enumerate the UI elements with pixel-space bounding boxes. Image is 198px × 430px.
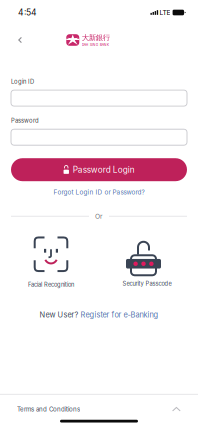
staticText: 大新銀行: [82, 33, 110, 42]
staticText: Password: [11, 117, 39, 124]
button[interactable]: Password Login: [11, 158, 187, 181]
button[interactable]: Back: [10, 30, 30, 50]
staticText: Or: [95, 212, 103, 220]
staticText: New User?: [39, 310, 78, 319]
button[interactable]: Register for e-Banking: [78, 310, 158, 319]
staticText: LTE: [159, 8, 170, 17]
staticText: Login ID: [11, 78, 34, 85]
staticText: Password Login: [73, 165, 135, 175]
staticText: Terms and Conditions: [17, 405, 80, 413]
button[interactable]: Terms and Conditions: [0, 395, 198, 420]
staticText: Register for e-Banking: [78, 310, 158, 319]
button[interactable]: Security Passcode: [107, 237, 187, 287]
staticText: 4:54: [18, 7, 37, 18]
staticText: DAH SING BANK: [82, 43, 109, 47]
button[interactable]: Forgot Login ID or Password?: [11, 185, 187, 199]
staticText: Security Passcode: [122, 280, 171, 287]
button[interactable]: Facial Recognition: [11, 236, 91, 288]
staticText: Facial Recognition: [28, 281, 74, 288]
staticText: Forgot Login ID or Password?: [53, 188, 144, 196]
